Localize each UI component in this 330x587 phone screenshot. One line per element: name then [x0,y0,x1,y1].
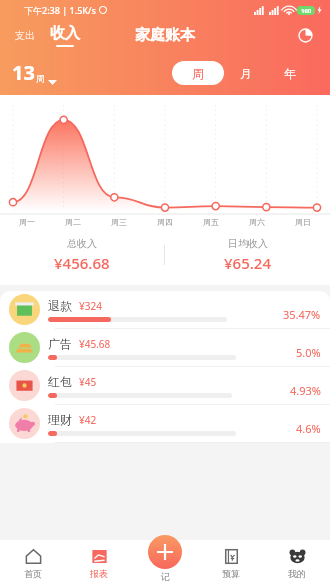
staticText: 5.0% [296,345,321,360]
staticText: 日均收入 [228,237,268,250]
staticText: 周三 [96,217,142,227]
staticText: 4.93% [290,383,321,398]
staticText: 记 [161,571,170,582]
staticText: 周 [36,73,45,84]
staticText: ¥324 [79,299,102,313]
staticText: 周二 [50,217,96,227]
button[interactable]: 红包 [0,366,330,404]
staticText: 周五 [188,217,234,227]
button[interactable]: 退款 [0,291,330,328]
button[interactable]: 理财 [0,404,330,442]
staticText: 支出 [15,29,35,42]
button[interactable]: 我的 [264,540,330,587]
staticText: 月 [240,66,252,81]
button[interactable]: Chart [294,24,316,46]
staticText: 首页 [24,568,42,579]
staticText: 广告 [48,336,72,351]
staticText: ¥42 [79,413,97,427]
staticText: 我的 [288,568,306,579]
button[interactable]: 年 [268,61,312,85]
staticText: 收入 [50,24,80,43]
button[interactable]: 月 [224,61,268,85]
staticText: ¥45.68 [79,337,111,351]
staticText: 周六 [234,217,280,227]
button[interactable]: 预算 [198,540,264,587]
staticText: 100 [301,7,312,15]
button[interactable]: 周 [172,61,224,85]
staticText: 周四 [142,217,188,227]
button[interactable]: 报表 [66,540,132,587]
staticText: 退款 [48,298,72,313]
staticText: 红包 [48,374,72,389]
staticText: 报表 [90,568,108,579]
staticText: 总收入 [67,237,97,250]
staticText: 周日 [280,217,326,227]
button[interactable]: 13 [12,59,57,86]
button[interactable]: 家庭账本 [135,26,195,45]
staticText: ¥456.68 [54,253,110,273]
staticText: 预算 [222,568,240,579]
staticText: 35.47% [283,307,321,322]
staticText: 周 [192,66,204,81]
staticText: 4.6% [296,421,321,436]
staticText: ¥65.24 [224,253,271,273]
staticText: 理财 [48,412,72,427]
button[interactable]: Add record [148,535,182,569]
staticText: 周一 [4,217,50,227]
staticText: 年 [284,66,296,81]
button[interactable]: 首页 [0,540,66,587]
button[interactable]: 收入 [48,24,82,47]
staticText: 下午2:38 | 1.5K/s [24,4,96,16]
button[interactable]: 支出 [12,26,38,45]
staticText: ¥45 [79,375,97,389]
button[interactable]: 广告 [0,328,330,366]
staticText: 13 [12,59,35,86]
